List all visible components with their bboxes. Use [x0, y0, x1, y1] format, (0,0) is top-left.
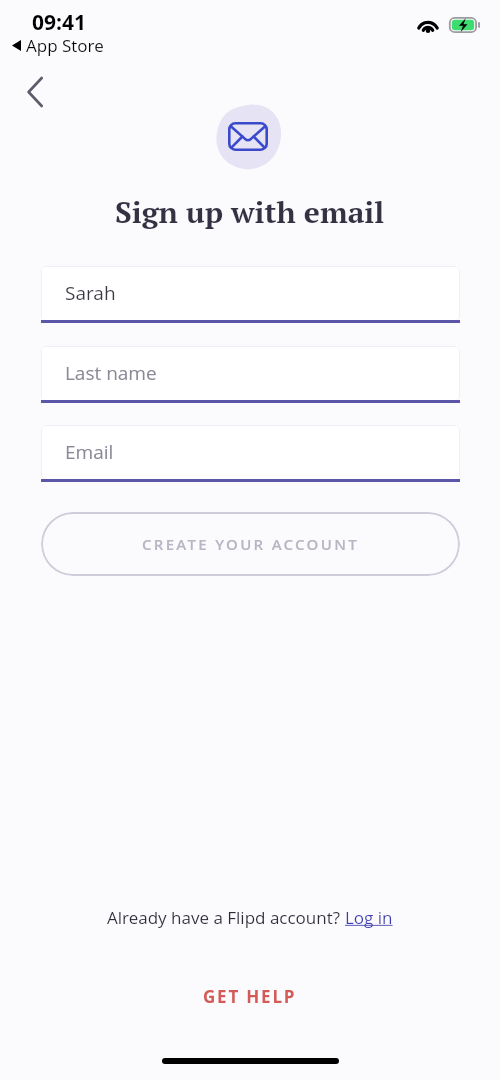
staticText: 09:41: [32, 8, 86, 37]
staticText: GET HELP: [203, 985, 297, 1008]
staticText: Email: [65, 439, 114, 465]
staticText: App Store: [26, 34, 104, 57]
button[interactable]: Sarah: [41, 266, 460, 323]
staticText: CREATE YOUR ACCOUNT: [142, 534, 359, 554]
staticText: Sarah: [65, 280, 116, 306]
staticText: Sign up with email: [115, 192, 385, 232]
staticText: Log in: [345, 906, 393, 929]
button[interactable]: Last name: [41, 346, 460, 403]
button[interactable]: Log in: [345, 906, 393, 929]
button[interactable]: Email: [41, 425, 460, 482]
button[interactable]: CREATE YOUR ACCOUNT: [41, 512, 460, 576]
staticText: Last name: [65, 360, 157, 386]
button[interactable]: GET HELP: [185, 977, 315, 1016]
button[interactable]: Back: [11, 68, 59, 116]
staticText: Already have a Flipd account?: [107, 906, 345, 929]
